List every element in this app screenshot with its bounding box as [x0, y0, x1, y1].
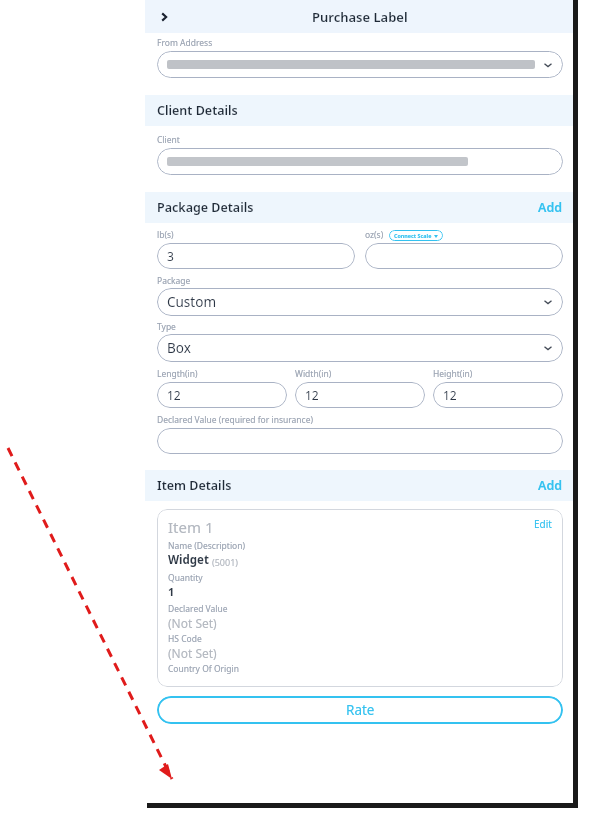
- staticText: Item 1: [168, 517, 214, 537]
- button[interactable]: Custom: [157, 288, 563, 316]
- button[interactable]: 12: [433, 382, 563, 408]
- button[interactable]: [157, 428, 563, 454]
- staticText: Width(in): [295, 368, 332, 380]
- staticText: Custom: [167, 293, 217, 311]
- button[interactable]: Back: [153, 6, 175, 28]
- staticText: Widget: [168, 552, 209, 568]
- button[interactable]: Connect Scale: [389, 230, 443, 241]
- staticText: Length(in): [157, 368, 198, 380]
- staticText: lb(s): [157, 229, 174, 241]
- button[interactable]: Add: [538, 477, 563, 494]
- button[interactable]: Add: [538, 199, 563, 216]
- staticText: Add: [538, 477, 563, 494]
- staticText: (Not Set): [168, 645, 217, 661]
- staticText: Package Details: [157, 199, 254, 216]
- button[interactable]: [157, 51, 563, 78]
- staticText: Declared Value: [168, 603, 228, 615]
- staticText: 1: [168, 584, 175, 599]
- staticText: Client Details: [157, 102, 238, 119]
- staticText: 12: [443, 387, 457, 403]
- staticText: 3: [167, 248, 174, 264]
- button[interactable]: 3: [157, 243, 355, 269]
- staticText: HS Code: [168, 633, 202, 645]
- button[interactable]: Edit: [157, 509, 563, 687]
- button[interactable]: Rate: [157, 696, 563, 724]
- staticText: Type: [157, 321, 176, 333]
- staticText: 12: [305, 387, 319, 403]
- staticText: 12: [167, 387, 181, 403]
- staticText: Country Of Origin: [168, 663, 239, 675]
- staticText: From Address: [157, 37, 213, 49]
- staticText: Add: [538, 199, 563, 216]
- staticText: Edit: [534, 517, 552, 531]
- staticText: Connect Scale: [394, 232, 432, 239]
- staticText: Box: [167, 339, 191, 357]
- button[interactable]: 12: [157, 382, 287, 408]
- button[interactable]: Box: [157, 334, 563, 362]
- staticText: Height(in): [433, 368, 473, 380]
- staticText: Name (Description): [168, 540, 246, 552]
- staticText: (Not Set): [168, 615, 217, 631]
- staticText: Client: [157, 134, 180, 146]
- staticText: Quantity: [168, 572, 203, 584]
- staticText: Item Details: [157, 477, 232, 494]
- button[interactable]: [365, 243, 563, 269]
- staticText: Rate: [346, 701, 375, 719]
- button[interactable]: [157, 148, 563, 175]
- button[interactable]: Edit: [534, 517, 552, 531]
- staticText: Purchase Label: [312, 8, 408, 26]
- staticText: oz(s): [365, 229, 384, 241]
- staticText: Declared Value (required for insurance): [157, 414, 314, 426]
- button[interactable]: 12: [295, 382, 425, 408]
- staticText: (5001): [212, 556, 238, 568]
- staticText: Package: [157, 275, 191, 287]
